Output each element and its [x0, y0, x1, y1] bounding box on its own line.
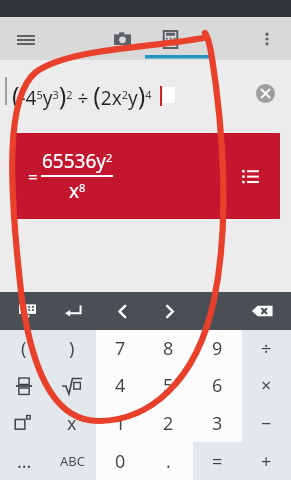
- staticText: 8: [163, 336, 174, 361]
- button[interactable]: Camera: [104, 21, 140, 57]
- staticText: x: [67, 411, 77, 436]
- staticText: 7: [115, 336, 126, 361]
- staticText: 1: [115, 411, 126, 436]
- button[interactable]: 4: [96, 367, 144, 404]
- staticText: (-45y3)2 ÷ (2x2y)4: [12, 78, 152, 112]
- button[interactable]: [0, 367, 48, 404]
- button[interactable]: [0, 404, 48, 442]
- button[interactable]: 9: [193, 330, 242, 367]
- button[interactable]: More options: [249, 21, 285, 57]
- staticText: 0: [115, 449, 126, 474]
- staticText: 65536y2: [42, 148, 113, 174]
- button[interactable]: 5: [144, 367, 193, 404]
- staticText: =: [28, 165, 38, 188]
- button[interactable]: =: [11, 133, 280, 219]
- button[interactable]: 8: [144, 330, 193, 367]
- button[interactable]: Calculator: [152, 21, 188, 57]
- button[interactable]: ×: [242, 367, 291, 404]
- staticText: 3: [212, 411, 223, 436]
- staticText: …: [17, 449, 32, 474]
- button[interactable]: +: [242, 442, 291, 480]
- staticText: 6: [212, 373, 223, 398]
- button[interactable]: 2: [144, 404, 193, 442]
- button[interactable]: Menu: [8, 21, 44, 57]
- button[interactable]: x: [48, 404, 96, 442]
- staticText: −: [261, 411, 272, 436]
- button[interactable]: 0: [96, 442, 144, 480]
- staticText: 4: [115, 373, 126, 398]
- button[interactable]: Enter: [56, 294, 90, 328]
- button[interactable]: Move right: [152, 294, 186, 328]
- button[interactable]: 7: [96, 330, 144, 367]
- staticText: ×: [261, 373, 272, 398]
- button[interactable]: (: [0, 330, 48, 367]
- button[interactable]: −: [242, 404, 291, 442]
- button[interactable]: 1: [96, 404, 144, 442]
- staticText: .: [166, 449, 171, 474]
- staticText: =: [212, 449, 223, 474]
- button[interactable]: ABC: [48, 442, 96, 480]
- button[interactable]: Move left: [105, 294, 139, 328]
- button[interactable]: 3: [193, 404, 242, 442]
- staticText: ÷: [261, 336, 272, 361]
- staticText: +: [261, 449, 272, 474]
- staticText: 2: [163, 411, 174, 436]
- staticText: 9: [212, 336, 223, 361]
- button[interactable]: [48, 367, 96, 404]
- button[interactable]: Clear: [250, 78, 280, 108]
- button[interactable]: ÷: [242, 330, 291, 367]
- button[interactable]: =: [193, 442, 242, 480]
- button[interactable]: .: [144, 442, 193, 480]
- staticText: ABC: [60, 452, 85, 470]
- button[interactable]: Hide keyboard: [10, 294, 44, 328]
- staticText: x8: [69, 178, 86, 204]
- button[interactable]: …: [0, 442, 48, 480]
- button[interactable]: ): [48, 330, 96, 367]
- staticText: ): [69, 336, 75, 361]
- button[interactable]: 6: [193, 367, 242, 404]
- staticText: (: [21, 336, 27, 361]
- staticText: 5: [163, 373, 174, 398]
- button[interactable]: History: [236, 161, 266, 191]
- button[interactable]: Backspace: [245, 294, 279, 328]
